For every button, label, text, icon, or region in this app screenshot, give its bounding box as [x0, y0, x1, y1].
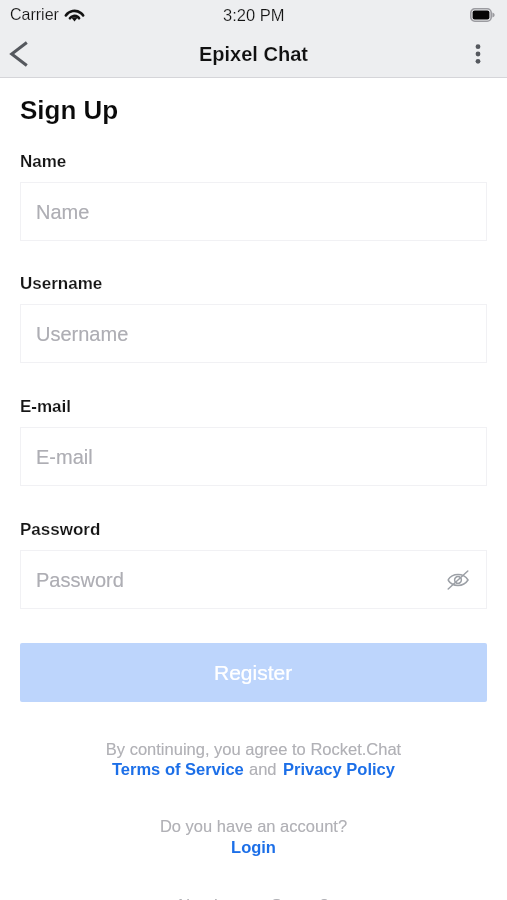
- staticText: Sign Up: [20, 95, 119, 124]
- button[interactable]: Password: [20, 550, 487, 609]
- button[interactable]: Name: [20, 182, 487, 241]
- staticText: Need a new Server?: [20, 896, 487, 900]
- button[interactable]: Login: [231, 838, 276, 856]
- staticText: Do you have an account?: [20, 817, 487, 835]
- staticText: By continuing, you agree to Rocket.Chat: [20, 740, 487, 758]
- staticText: E-mail: [20, 397, 72, 416]
- staticText: Carrier: [10, 6, 59, 24]
- button[interactable]: E-mail: [20, 427, 487, 486]
- button[interactable]: Back: [0, 35, 38, 73]
- staticText: Epixel Chat: [199, 43, 308, 65]
- staticText: Username: [20, 274, 103, 293]
- staticText: Password: [36, 569, 124, 591]
- staticText: and: [249, 760, 277, 778]
- button[interactable]: Terms of Service: [112, 760, 244, 778]
- button[interactable]: Username: [20, 304, 487, 363]
- staticText: Username: [36, 323, 129, 345]
- button[interactable]: Register: [20, 643, 487, 702]
- staticText: Name: [36, 201, 90, 223]
- staticText: 3:20 PM: [223, 6, 285, 24]
- staticText: Register: [214, 661, 293, 684]
- button[interactable]: More options: [458, 34, 498, 74]
- staticText: Name: [20, 152, 67, 171]
- staticText: Password: [20, 520, 101, 539]
- button[interactable]: Show password: [445, 567, 471, 593]
- button[interactable]: Privacy Policy: [283, 760, 395, 778]
- staticText: E-mail: [36, 446, 93, 468]
